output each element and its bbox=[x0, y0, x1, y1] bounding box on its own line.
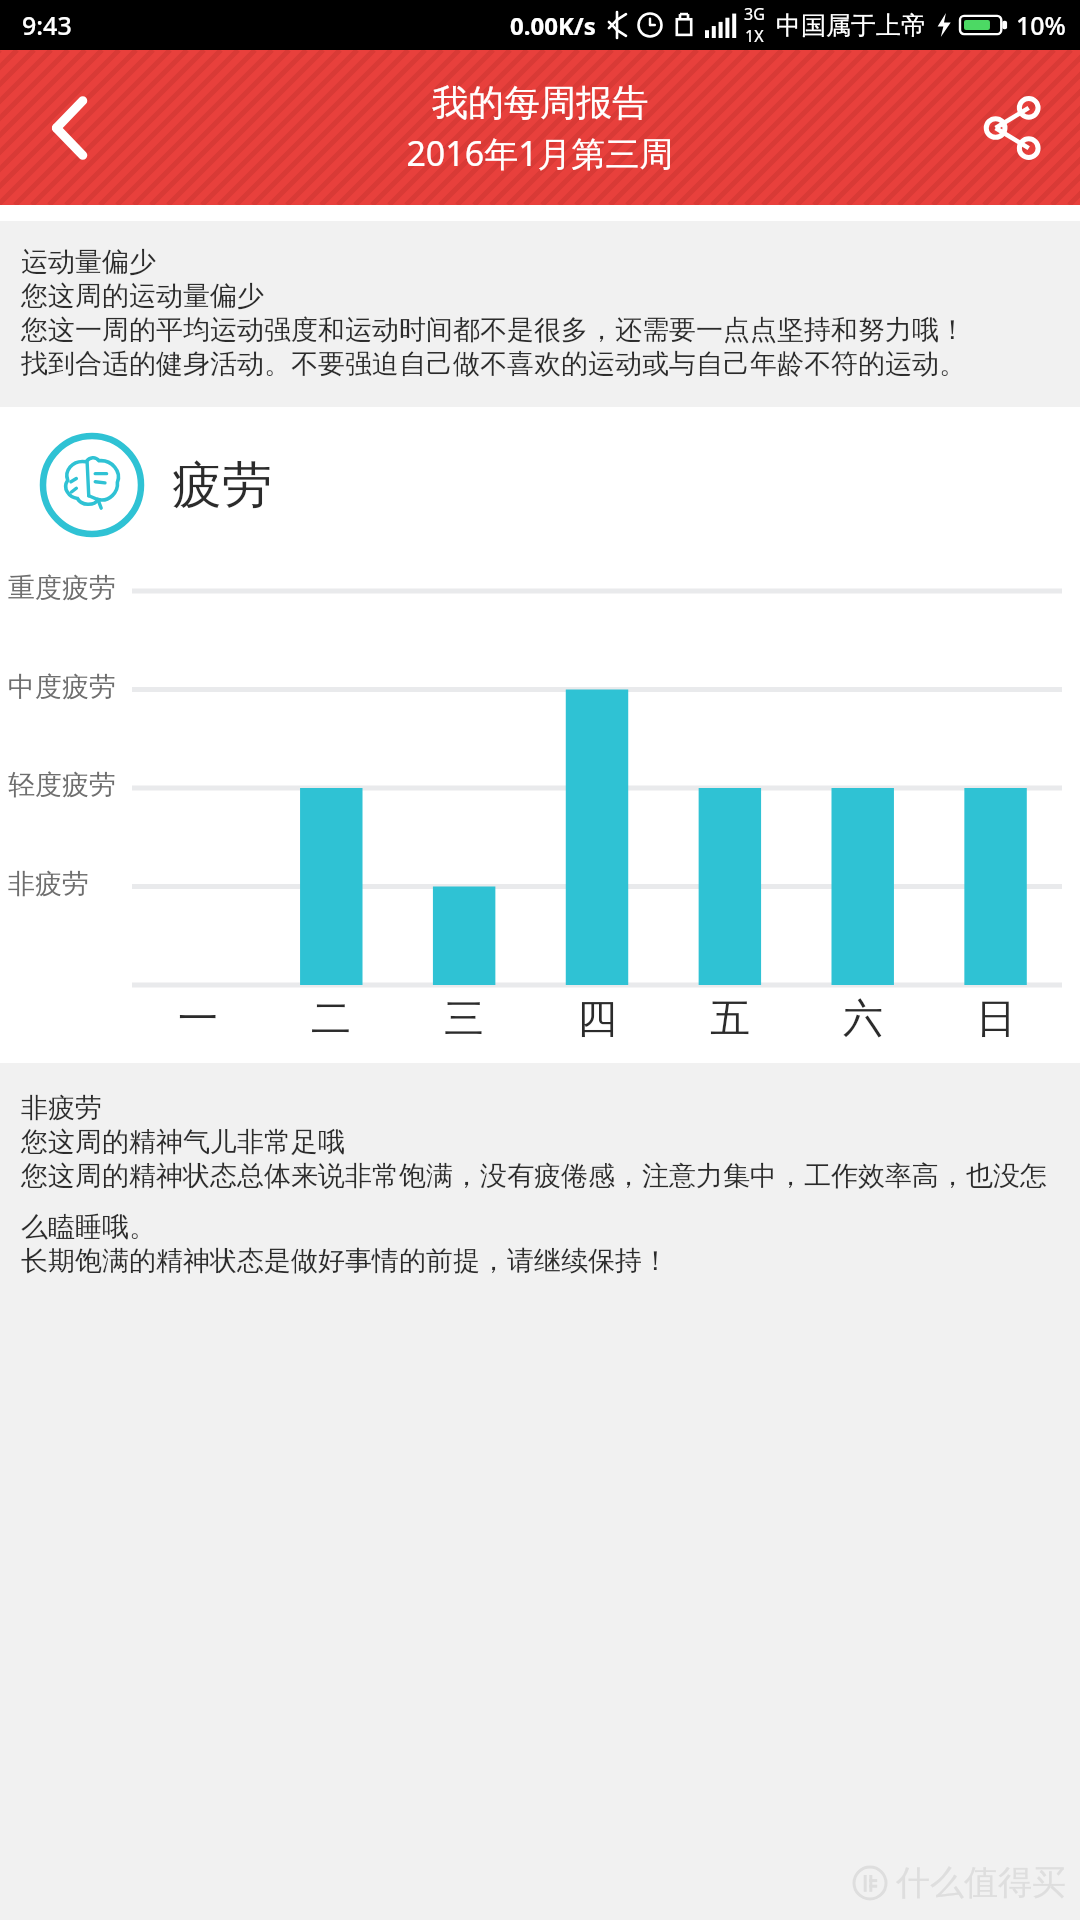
staticText: 非疲劳 bbox=[8, 867, 89, 901]
staticText: 疲劳 bbox=[172, 454, 272, 517]
button[interactable]: Share bbox=[940, 50, 1080, 205]
staticText: 非疲劳 bbox=[21, 1091, 102, 1125]
staticText: 长期饱满的精神状态是做好事情的前提，请继续保持！ bbox=[21, 1244, 669, 1278]
staticText: 3G bbox=[744, 3, 765, 25]
staticText: 轻度疲劳 bbox=[8, 768, 116, 802]
staticText: 运动量偏少 bbox=[21, 245, 156, 279]
staticText: 10% bbox=[1016, 8, 1066, 42]
staticText: 中国属于上帝 bbox=[776, 10, 926, 41]
staticText: 找到合适的健身活动。不要强迫自己做不喜欢的运动或与自己年龄不符的运动。 bbox=[21, 347, 966, 381]
staticText: 五 bbox=[710, 993, 750, 1043]
staticText: 1X bbox=[745, 25, 764, 47]
staticText: 我的每周报告 bbox=[432, 80, 648, 125]
staticText: 中度疲劳 bbox=[8, 670, 116, 704]
staticText: 您这周的运动量偏少 bbox=[21, 279, 264, 313]
staticText: 您这周的精神状态总体来说非常饱满，没有疲倦感，注意力集中，工作效率高，也没怎么瞌… bbox=[21, 1159, 1056, 1244]
staticText: 什么值得买 bbox=[896, 1861, 1066, 1904]
button[interactable]: 疲劳 bbox=[38, 431, 1080, 539]
staticText: 日 bbox=[976, 993, 1016, 1043]
staticText: 您这周的精神气儿非常足哦 bbox=[21, 1125, 345, 1159]
staticText: 0.00K/s bbox=[510, 9, 596, 42]
staticText: 六 bbox=[843, 993, 883, 1043]
staticText: 二 bbox=[311, 993, 351, 1043]
staticText: 2016年1月第三周 bbox=[406, 130, 674, 176]
staticText: 一 bbox=[178, 993, 218, 1043]
button[interactable]: Back bbox=[0, 50, 140, 205]
staticText: 四 bbox=[577, 993, 617, 1043]
staticText: 您这一周的平均运动强度和运动时间都不是很多，还需要一点点坚持和努力哦！ bbox=[21, 313, 966, 347]
staticText: 三 bbox=[444, 993, 484, 1043]
staticText: 9:43 bbox=[22, 8, 72, 42]
staticText: 重度疲劳 bbox=[8, 571, 116, 605]
